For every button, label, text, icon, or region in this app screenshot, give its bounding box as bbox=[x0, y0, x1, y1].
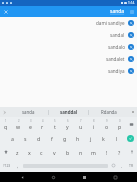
staticText: s bbox=[24, 135, 27, 142]
button[interactable]: ! bbox=[100, 145, 113, 159]
staticText: h bbox=[76, 135, 80, 142]
button[interactable]: z bbox=[11, 145, 23, 159]
staticText: v bbox=[53, 149, 56, 156]
button[interactable]: g bbox=[58, 131, 71, 145]
button[interactable]: ?123 bbox=[0, 159, 14, 172]
button[interactable]: l bbox=[110, 131, 123, 145]
staticText: m bbox=[91, 149, 96, 156]
staticText: sandalo bbox=[108, 44, 125, 50]
button[interactable]: v bbox=[48, 145, 61, 159]
button[interactable]: 9 bbox=[100, 117, 113, 131]
staticText: t bbox=[54, 123, 56, 130]
button[interactable]: Recents bbox=[75, 172, 93, 182]
button[interactable]: h bbox=[71, 131, 84, 145]
staticText: 8 bbox=[93, 119, 95, 123]
button[interactable]: 3 bbox=[24, 117, 36, 131]
button[interactable]: n bbox=[74, 145, 87, 159]
staticText: 5 bbox=[54, 119, 56, 123]
staticText: g bbox=[63, 135, 67, 142]
button[interactable]: dami sandiye bbox=[0, 17, 137, 29]
button[interactable]: j bbox=[84, 131, 97, 145]
button[interactable]: d bbox=[32, 131, 45, 145]
staticText: l bbox=[116, 135, 118, 142]
button[interactable]: Enter bbox=[123, 131, 137, 145]
staticText: sandal bbox=[110, 32, 125, 38]
staticText: Rdanda bbox=[101, 109, 117, 115]
button[interactable]: Backspace bbox=[126, 117, 137, 131]
staticText: 0 bbox=[119, 119, 121, 123]
staticText: y bbox=[66, 123, 69, 130]
button[interactable]: Close search bbox=[1, 7, 10, 16]
button[interactable]: Use suggestion bbox=[128, 44, 134, 50]
button[interactable]: sandalet bbox=[0, 53, 137, 65]
staticText: i bbox=[93, 123, 95, 130]
button[interactable]: x bbox=[23, 145, 35, 159]
staticText: d bbox=[37, 135, 41, 142]
staticText: p bbox=[118, 123, 122, 130]
button[interactable]: More options bbox=[127, 7, 136, 16]
staticText: ! bbox=[106, 149, 108, 156]
button[interactable]: 4 bbox=[36, 117, 48, 131]
button[interactable]: k bbox=[97, 131, 110, 145]
staticText: f bbox=[51, 135, 53, 142]
button[interactable]: Use suggestion bbox=[128, 68, 134, 74]
staticText: 6 bbox=[67, 119, 69, 123]
button[interactable]: 1 bbox=[0, 117, 12, 131]
button[interactable]: 2 bbox=[12, 117, 24, 131]
button[interactable]: s bbox=[19, 131, 32, 145]
button[interactable]: 0 bbox=[113, 117, 126, 131]
button[interactable]: 7 bbox=[74, 117, 87, 131]
button[interactable]: sandal bbox=[0, 29, 137, 41]
staticText: z bbox=[16, 149, 19, 156]
staticText: a bbox=[11, 135, 14, 142]
staticText: TR bbox=[129, 163, 133, 168]
staticText: 9 bbox=[106, 119, 108, 123]
button[interactable]: More suggestions bbox=[0, 107, 9, 117]
button[interactable]: Keyboard settings bbox=[128, 107, 137, 117]
staticText: sanda bbox=[22, 109, 35, 115]
button[interactable]: Comma bbox=[14, 159, 22, 172]
staticText: sandalet bbox=[106, 56, 125, 62]
staticText: j bbox=[90, 135, 92, 142]
staticText: x bbox=[28, 149, 31, 156]
button[interactable]: 5 bbox=[48, 117, 61, 131]
button[interactable]: sanddal bbox=[49, 107, 88, 117]
button[interactable]: Screenshot bbox=[106, 172, 124, 182]
button[interactable]: Shift bbox=[0, 145, 11, 159]
button[interactable]: b bbox=[61, 145, 74, 159]
staticText: sandiya bbox=[108, 68, 125, 74]
button[interactable]: ? bbox=[113, 145, 126, 159]
staticText: r bbox=[41, 123, 44, 130]
button[interactable]: a bbox=[6, 131, 19, 145]
button[interactable]: sanda bbox=[9, 107, 48, 117]
staticText: sanda bbox=[110, 8, 125, 15]
staticText: k bbox=[102, 135, 105, 142]
staticText: 4 bbox=[42, 119, 44, 123]
button[interactable]: Use suggestion bbox=[128, 20, 134, 26]
staticText: 7 bbox=[80, 119, 82, 123]
button[interactable]: Rdanda bbox=[89, 107, 128, 117]
button[interactable]: m bbox=[87, 145, 100, 159]
button[interactable]: 6 bbox=[61, 117, 74, 131]
button[interactable]: Home bbox=[44, 172, 62, 182]
button[interactable]: 8 bbox=[87, 117, 100, 131]
button[interactable]: Use suggestion bbox=[128, 32, 134, 38]
button[interactable]: Emoji bbox=[109, 159, 118, 172]
button[interactable]: f bbox=[45, 131, 58, 145]
button[interactable]: sandiya bbox=[0, 65, 137, 77]
button[interactable]: c bbox=[35, 145, 48, 159]
staticText: dami sandiye bbox=[96, 20, 125, 26]
staticText: w bbox=[16, 123, 21, 130]
staticText: 3 bbox=[30, 119, 32, 123]
button[interactable]: Period bbox=[118, 159, 125, 172]
staticText: q bbox=[4, 123, 8, 130]
button[interactable]: Voice input bbox=[126, 145, 137, 159]
button[interactable]: TR bbox=[125, 159, 137, 172]
staticText: b bbox=[66, 149, 70, 156]
staticText: sanddal bbox=[60, 109, 78, 115]
button[interactable]: Use suggestion bbox=[128, 56, 134, 62]
button[interactable]: sandalo bbox=[0, 41, 137, 53]
button[interactable]: Back bbox=[13, 172, 31, 182]
button[interactable]: sanda bbox=[108, 7, 127, 16]
